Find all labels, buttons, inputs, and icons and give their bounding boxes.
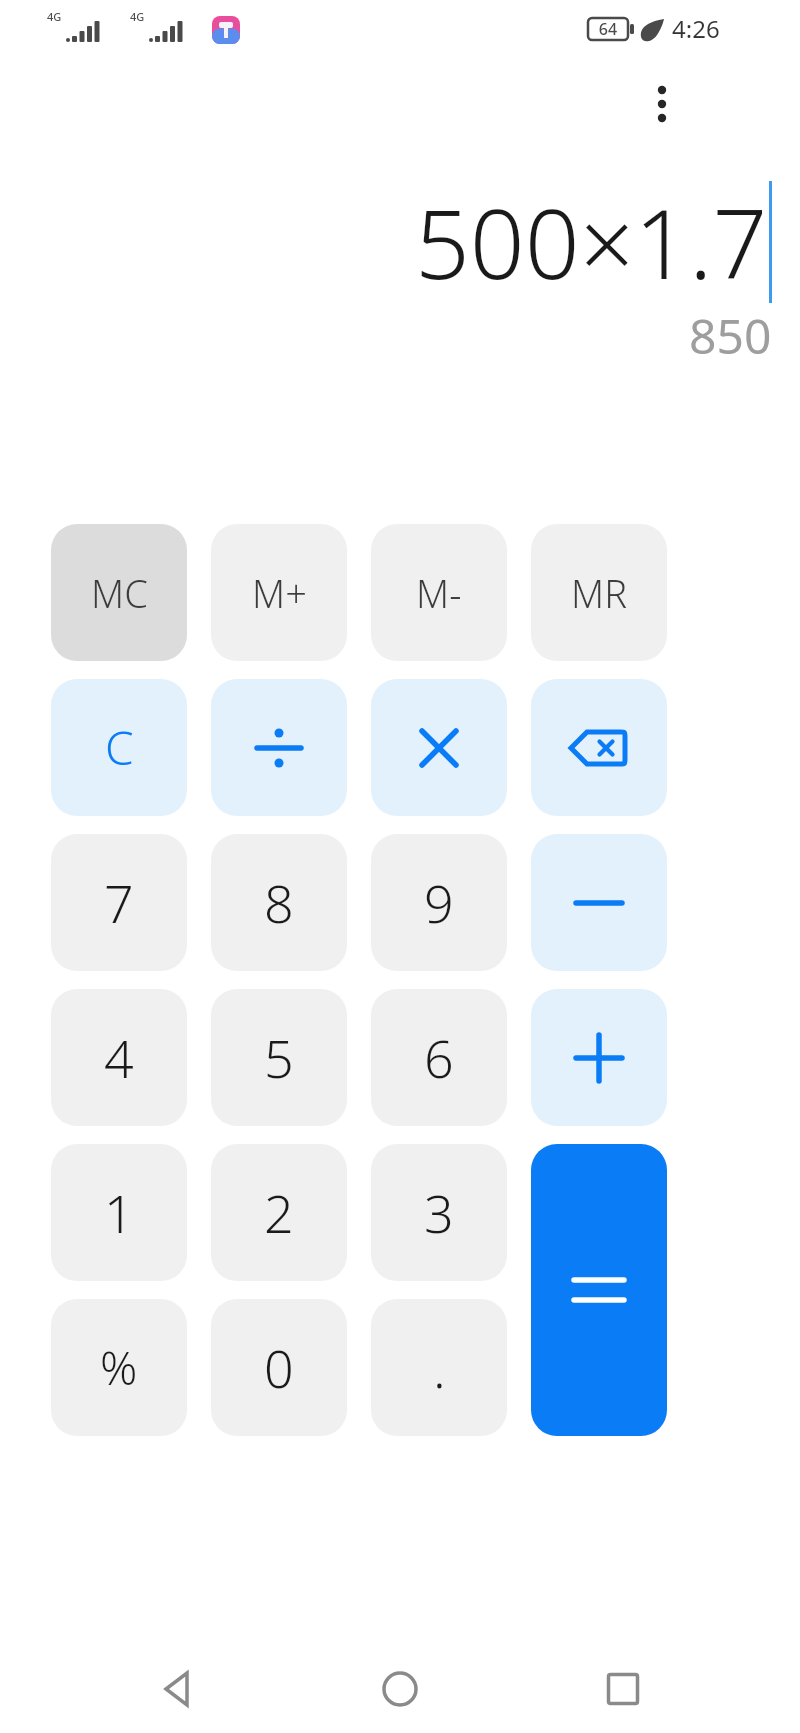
staticText: 3: [424, 1177, 454, 1248]
staticText: MC: [91, 567, 148, 619]
button[interactable]: Back: [133, 1645, 223, 1733]
staticText: 4: [104, 1022, 134, 1093]
button[interactable]: 8: [211, 834, 347, 971]
staticText: 7: [104, 867, 134, 938]
button[interactable]: Recent apps: [578, 1645, 668, 1733]
button[interactable]: 0: [211, 1299, 347, 1436]
staticText: 1: [104, 1177, 134, 1248]
staticText: C: [105, 716, 134, 779]
button[interactable]: 5: [211, 989, 347, 1126]
staticText: 850: [689, 303, 772, 368]
staticText: M-: [416, 567, 462, 619]
button[interactable]: %: [51, 1299, 187, 1436]
staticText: 500×1.7: [415, 176, 768, 307]
staticText: 64: [592, 18, 624, 40]
button[interactable]: MR: [531, 524, 667, 661]
button[interactable]: More options: [634, 76, 690, 132]
button[interactable]: Equals: [531, 1144, 667, 1436]
staticText: M+: [252, 567, 307, 619]
button[interactable]: Minus: [531, 834, 667, 971]
staticText: MR: [571, 567, 627, 619]
button[interactable]: 2: [211, 1144, 347, 1281]
button[interactable]: 3: [371, 1144, 507, 1281]
button[interactable]: 7: [51, 834, 187, 971]
staticText: 9: [424, 867, 454, 938]
staticText: .: [433, 1332, 446, 1403]
button[interactable]: MC: [51, 524, 187, 661]
button[interactable]: M+: [211, 524, 347, 661]
staticText: 6: [424, 1022, 454, 1093]
button[interactable]: Backspace: [531, 679, 667, 816]
button[interactable]: Home: [355, 1645, 445, 1733]
button[interactable]: 1: [51, 1144, 187, 1281]
button[interactable]: 9: [371, 834, 507, 971]
staticText: 4G: [47, 9, 62, 24]
button[interactable]: .: [371, 1299, 507, 1436]
button[interactable]: C: [51, 679, 187, 816]
staticText: 5: [264, 1022, 294, 1093]
staticText: 2: [264, 1177, 294, 1248]
staticText: 8: [264, 867, 294, 938]
staticText: 4:26: [672, 12, 720, 45]
button[interactable]: 4: [51, 989, 187, 1126]
button[interactable]: 6: [371, 989, 507, 1126]
staticText: 4G: [130, 9, 145, 24]
button[interactable]: M-: [371, 524, 507, 661]
button[interactable]: Multiply: [371, 679, 507, 816]
staticText: 0: [264, 1332, 294, 1403]
staticText: %: [100, 1336, 138, 1399]
button[interactable]: Divide: [211, 679, 347, 816]
button[interactable]: Plus: [531, 989, 667, 1126]
